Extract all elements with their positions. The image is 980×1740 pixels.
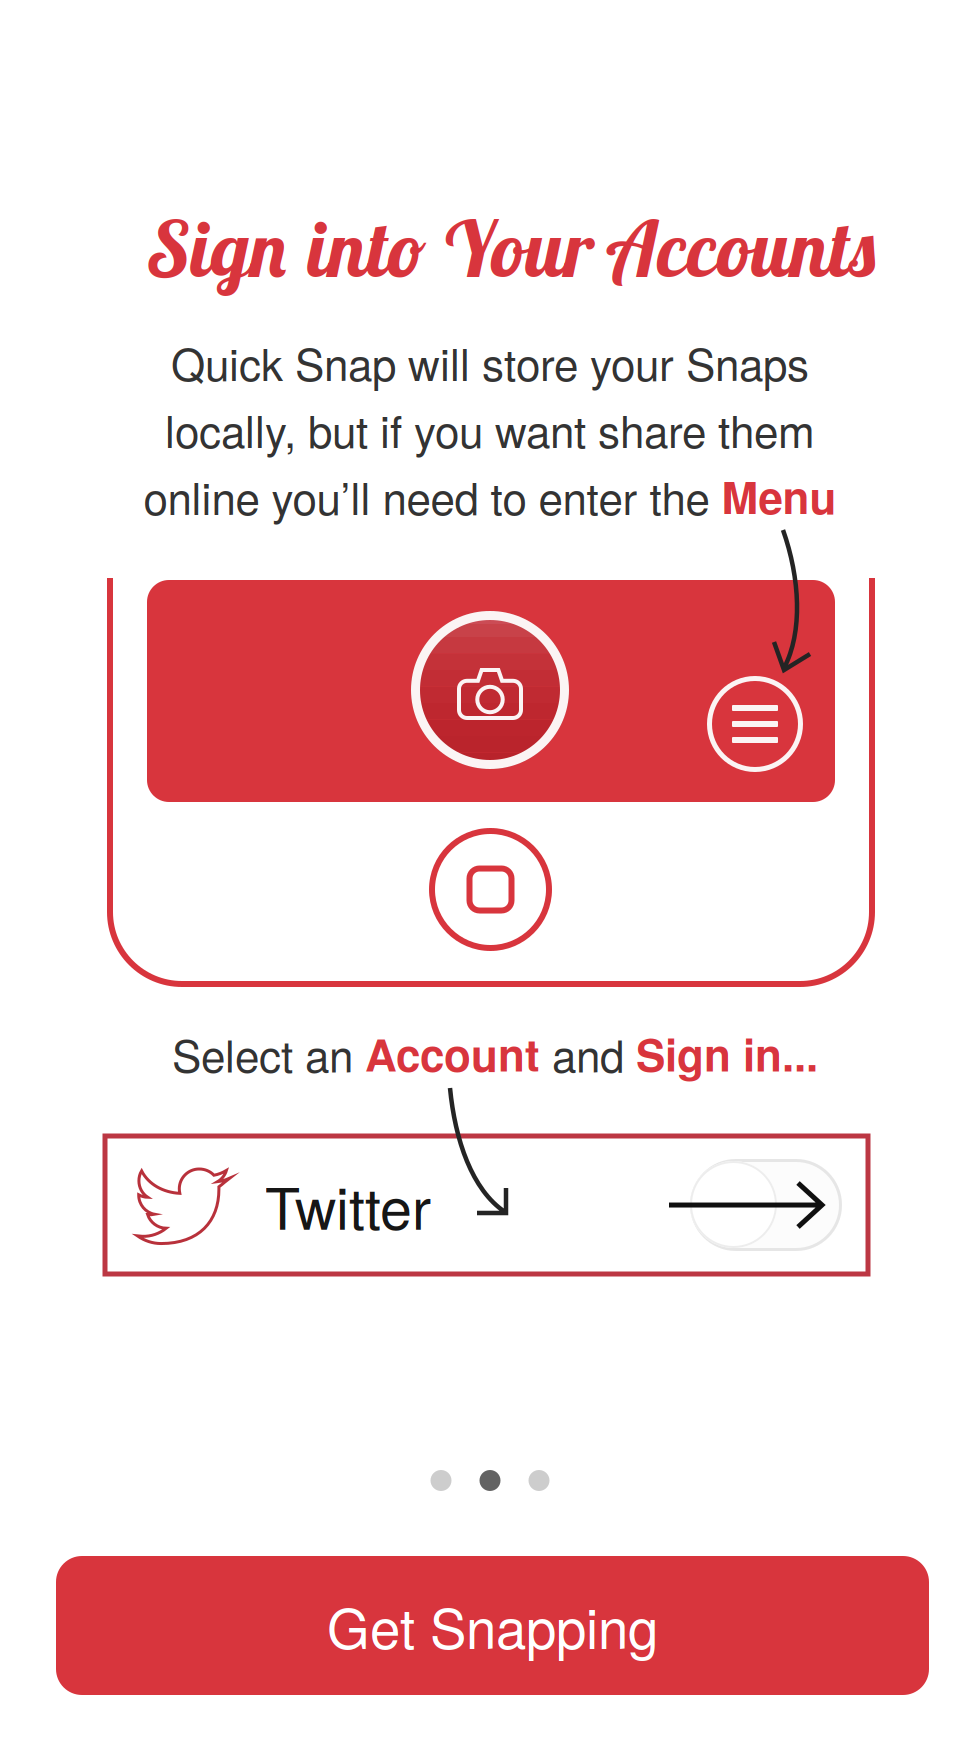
staticText: Get Snapping [327, 1586, 658, 1665]
staticText: Sign into Your Accounts [148, 200, 879, 296]
staticText: and [540, 1022, 636, 1085]
button[interactable]: Twitter [105, 1136, 868, 1274]
button[interactable]: Get Snapping [56, 1556, 929, 1695]
staticText: online you’ll need to enter the [143, 464, 721, 527]
staticText: Account [365, 1022, 540, 1085]
staticText: Sign in... [636, 1022, 818, 1085]
staticText: Select an [172, 1022, 365, 1085]
staticText: Menu [721, 464, 836, 527]
staticText: Quick Snap will store your Snaps [171, 330, 809, 393]
staticText: Twitter [265, 1164, 431, 1246]
staticText: locally, but if you want share them [165, 397, 815, 460]
